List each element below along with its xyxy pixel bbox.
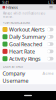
- button[interactable]: Daily Summary: [0, 33, 56, 40]
- staticText: 9:41: [2, 0, 9, 5]
- staticText: Acme: [42, 71, 53, 76]
- staticText: Manage which notifications you receive.: [2, 12, 45, 19]
- staticText: LOGIN SETTINGS: [2, 65, 22, 68]
- staticText: Company: [2, 70, 25, 77]
- button[interactable]: Menu: [48, 5, 53, 9]
- button[interactable]: Heart Rate: [0, 48, 56, 55]
- staticText: PUSH NOTIFICATIONS: [2, 21, 29, 25]
- staticText: Activity Rings: [9, 55, 41, 62]
- button[interactable]: Fitness: [2, 5, 18, 10]
- staticText: Daily Summary: [9, 33, 46, 40]
- button[interactable]: Company: [0, 70, 56, 77]
- staticText: Goal Reached: [9, 40, 42, 48]
- button[interactable]: Goal Reached: [0, 40, 56, 48]
- button[interactable]: Workout Alerts: [0, 26, 56, 33]
- staticText: Fitness: [6, 5, 18, 10]
- staticText: Username: [2, 77, 28, 84]
- button[interactable]: Activity Rings: [0, 55, 56, 62]
- button[interactable]: Username: [0, 77, 56, 84]
- staticText: Heart Rate: [9, 48, 35, 55]
- staticText: Workout Alerts: [9, 26, 45, 33]
- staticText: LTE: [48, 0, 54, 5]
